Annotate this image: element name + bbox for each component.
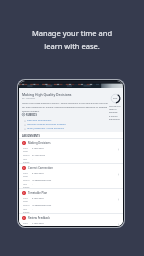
button[interactable]: Making Decisions (19, 139, 123, 163)
staticText: Topics that make making in senior / grou… (22, 102, 108, 105)
staticText: Start Date (23, 197, 32, 203)
staticText: Making Decisions (28, 141, 51, 145)
staticText: 27 April 2022 (32, 154, 45, 157)
staticText: course you refer to working (109, 105, 123, 114)
staticText: 6 April 2022 (32, 197, 44, 200)
staticText: ASSIGNMENTS (22, 134, 40, 137)
staticText: 40% (113, 97, 118, 100)
button[interactable]: Timetable Plan (19, 189, 123, 213)
other: Open assignment (117, 223, 120, 226)
staticText: Deal with Gratefulness (27, 119, 52, 122)
other: Open assignment (117, 148, 120, 151)
other: Open assignment (117, 173, 120, 176)
staticText: Must apply conflict questions (27, 131, 59, 134)
staticText: Due In (23, 154, 30, 157)
staticText: Due In (23, 204, 30, 207)
staticText: 16 September 2022 (32, 204, 52, 207)
staticText: Due In (23, 179, 30, 182)
staticText: 16 September 2022 (32, 179, 52, 182)
staticText: Start Date (23, 222, 32, 226)
staticText: for their influential or outline. Examin… (22, 106, 108, 109)
staticText: Maintain hopeful emotions thinking (27, 123, 66, 126)
button[interactable]: Correct Connection (19, 164, 123, 188)
staticText: Last Edited (23, 208, 32, 213)
staticText: - (32, 183, 33, 186)
staticText: Team Judgement / Good Decisions (27, 127, 65, 130)
staticText: Last Edited (23, 158, 32, 163)
staticText: - (32, 208, 33, 211)
staticText: 7 April 2022 (32, 222, 44, 225)
staticText: benefit avoided. (22, 110, 40, 113)
staticText: Start Date (23, 172, 32, 178)
staticText: 5 April 2022 (32, 172, 44, 175)
staticText: RUBRICS (26, 113, 37, 116)
staticText: Review Feedback (28, 216, 50, 220)
button[interactable]: Review Feedback (19, 214, 123, 226)
staticText: 3 April 2022 (32, 147, 44, 150)
staticText: learn with ease. (44, 41, 100, 51)
staticText: - (32, 158, 33, 161)
staticText: Timetable Plan (28, 191, 48, 195)
staticText: Start Date (23, 147, 32, 153)
other: Open assignment (117, 198, 120, 201)
staticText: Correct Connection (28, 166, 53, 170)
staticText: By Academy (22, 97, 36, 100)
staticText: Last Edited (23, 183, 32, 188)
staticText: Manage your time and (32, 28, 112, 38)
staticText: a month adjustable (109, 115, 123, 121)
staticText: Making High Quality Decisions (22, 92, 72, 97)
